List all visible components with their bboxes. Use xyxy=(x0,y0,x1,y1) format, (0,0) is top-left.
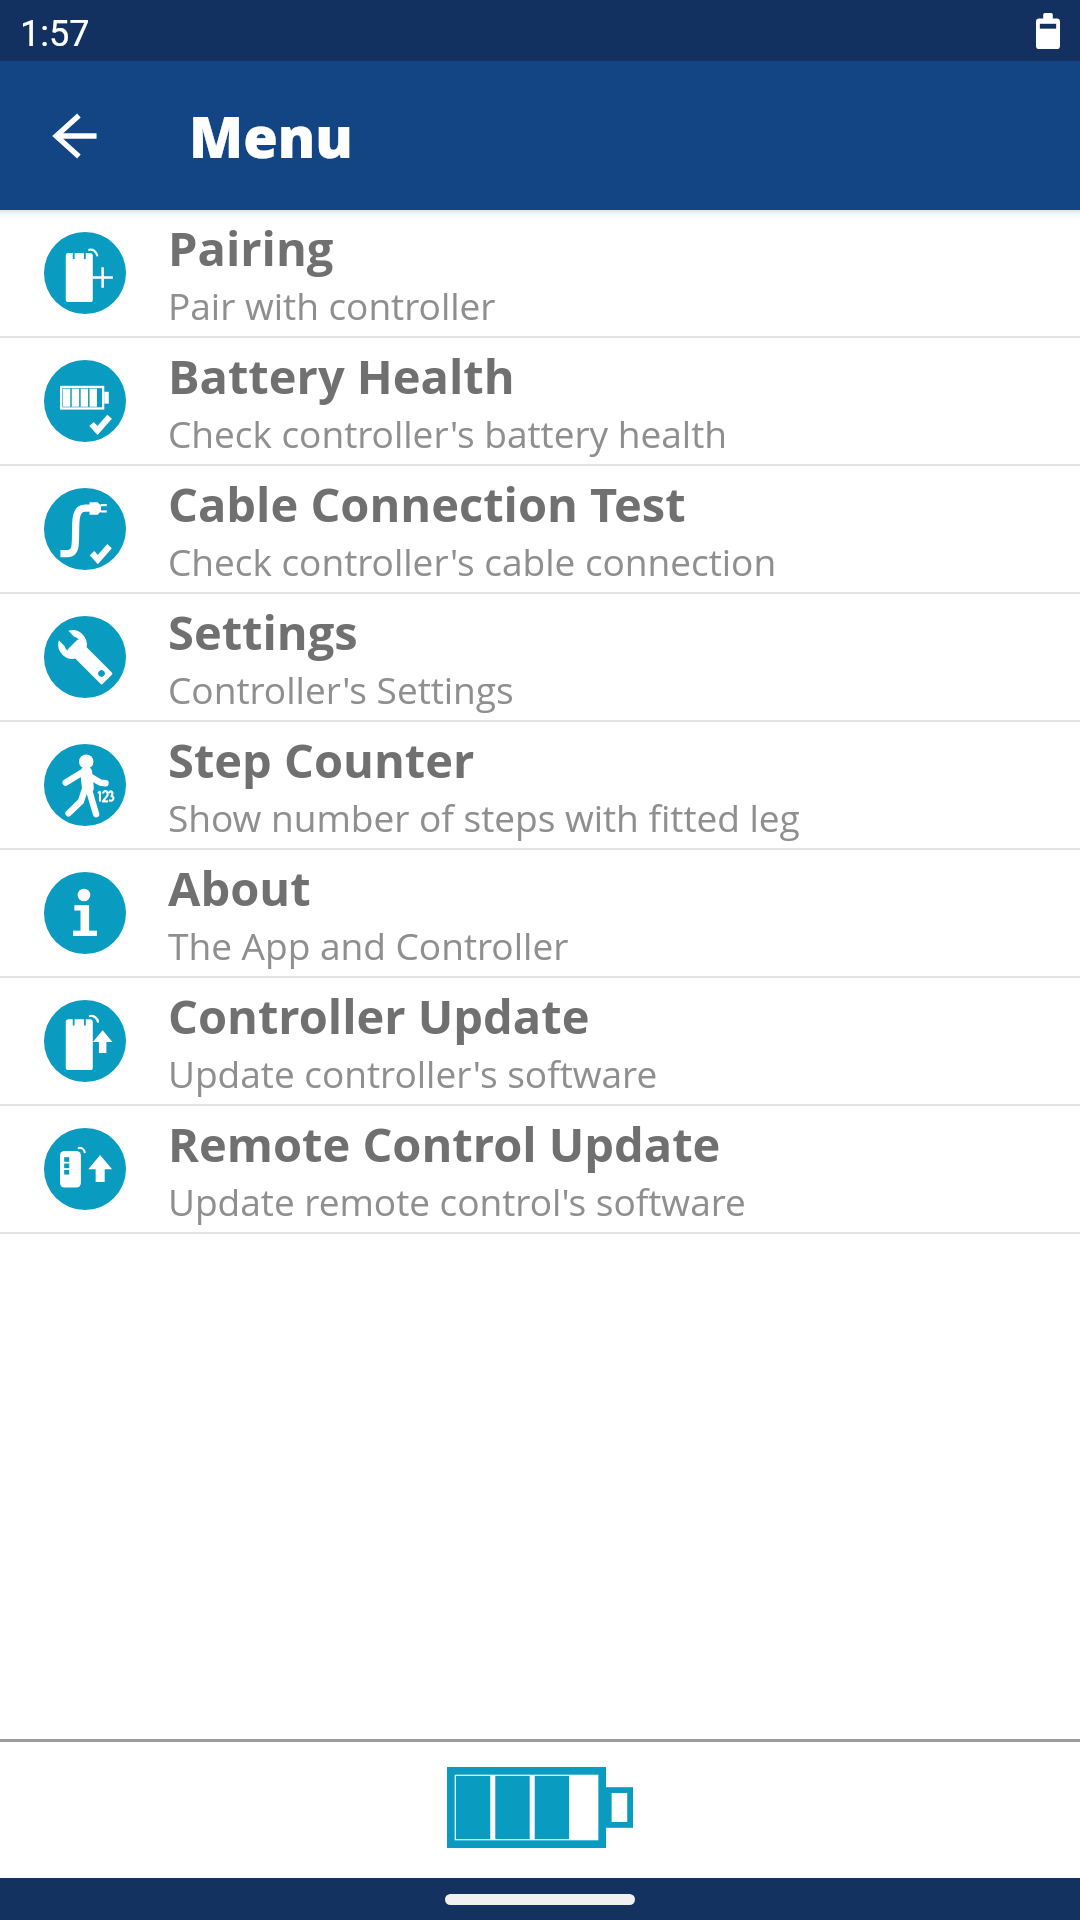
button[interactable]: Step Counter xyxy=(0,722,1080,850)
staticText: Cable Connection Test xyxy=(168,472,686,536)
staticText: Controller Update xyxy=(168,984,590,1048)
button[interactable]: Remote Control Update xyxy=(0,1106,1080,1234)
button[interactable]: Controller Update xyxy=(0,978,1080,1106)
staticText: Check controller's cable connection xyxy=(168,536,777,586)
staticText: Pair with controller xyxy=(168,280,496,330)
button[interactable]: Settings xyxy=(0,594,1080,722)
staticText: Pairing xyxy=(168,216,334,280)
staticText: Battery Health xyxy=(168,344,515,408)
button[interactable]: Cable Connection Test xyxy=(0,466,1080,594)
staticText: About xyxy=(168,856,311,920)
staticText: Check controller's battery health xyxy=(168,408,727,458)
button[interactable]: About xyxy=(0,850,1080,978)
staticText: Update controller's software xyxy=(168,1048,658,1098)
staticText: Step Counter xyxy=(168,728,475,792)
staticText: The App and Controller xyxy=(168,920,569,970)
button[interactable]: Back xyxy=(27,88,123,184)
button[interactable]: Pairing xyxy=(0,210,1080,338)
staticText: Controller's Settings xyxy=(168,664,514,714)
staticText: Remote Control Update xyxy=(168,1112,721,1176)
staticText: 1:57 xyxy=(20,13,90,55)
staticText: Show number of steps with fitted leg xyxy=(168,792,800,842)
button[interactable]: Battery Health xyxy=(0,338,1080,466)
staticText: Menu xyxy=(189,98,353,174)
staticText: Update remote control's software xyxy=(168,1176,746,1226)
staticText: Settings xyxy=(168,600,358,664)
